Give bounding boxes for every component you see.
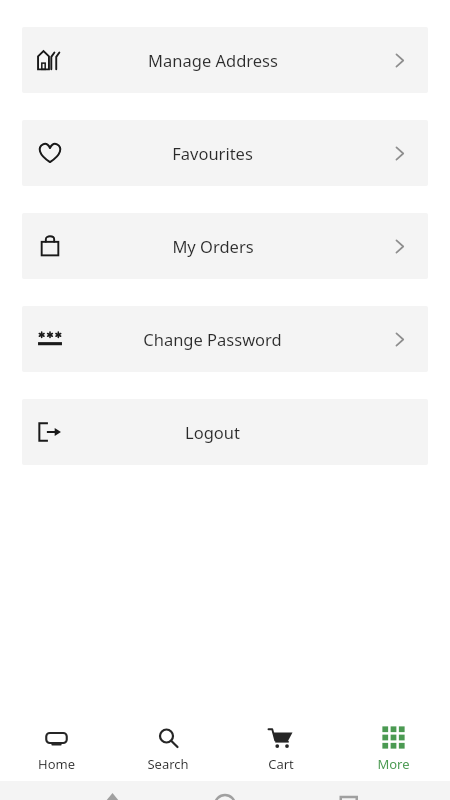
staticText: Home bbox=[38, 755, 75, 773]
button[interactable]: Logout bbox=[22, 399, 428, 465]
staticText: Manage Address bbox=[148, 49, 278, 71]
button[interactable]: Search bbox=[112, 726, 224, 773]
button[interactable]: My Orders bbox=[22, 213, 428, 279]
button[interactable]: Change Password bbox=[22, 306, 428, 372]
staticText: Change Password bbox=[143, 328, 282, 350]
staticText: Favourites bbox=[172, 142, 253, 164]
button[interactable]: Manage Address bbox=[22, 27, 428, 93]
staticText: Search bbox=[147, 755, 189, 773]
staticText: Logout bbox=[185, 421, 240, 443]
button[interactable]: Favourites bbox=[22, 120, 428, 186]
button[interactable]: Home bbox=[0, 726, 112, 773]
button[interactable]: Cart bbox=[224, 726, 337, 773]
staticText: More bbox=[377, 755, 410, 773]
button[interactable]: More bbox=[337, 726, 450, 773]
staticText: Cart bbox=[268, 755, 294, 773]
staticText: My Orders bbox=[172, 235, 254, 257]
